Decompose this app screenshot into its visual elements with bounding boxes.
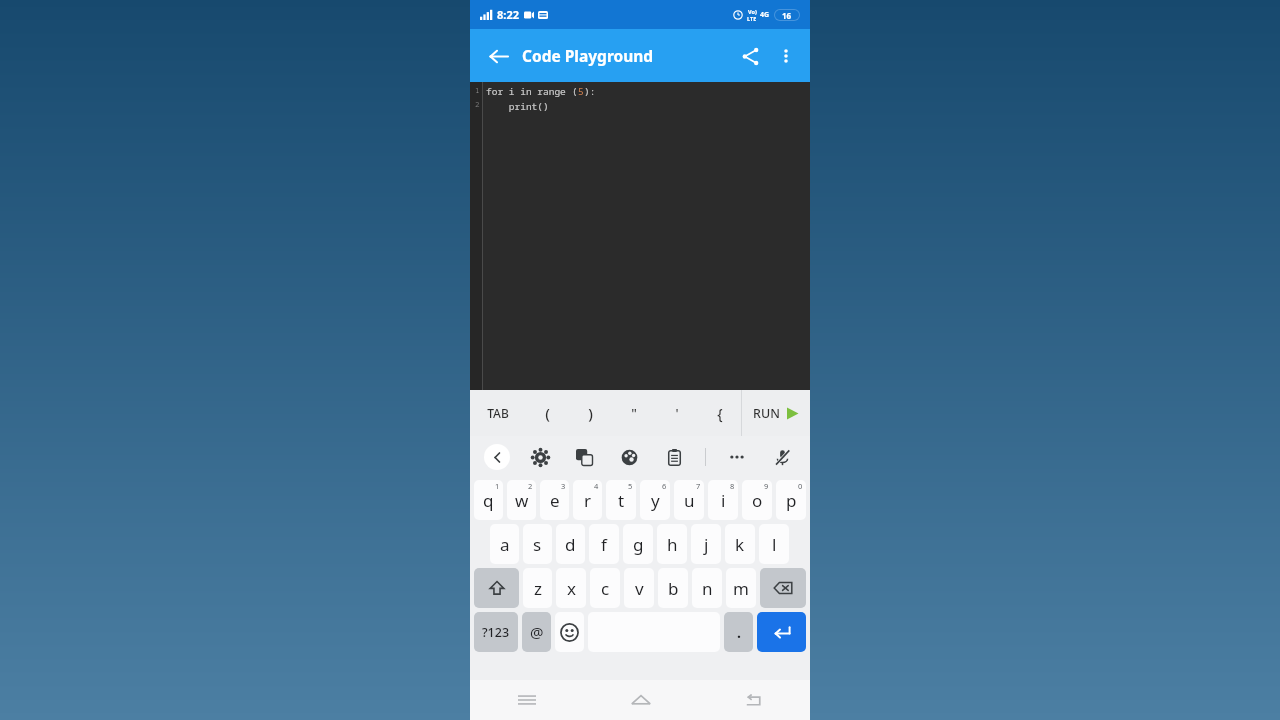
button[interactable]: q xyxy=(474,480,503,520)
button[interactable]: { xyxy=(698,390,741,436)
staticText: ( xyxy=(545,403,550,423)
button[interactable]: Share xyxy=(732,38,768,74)
staticText: @ xyxy=(530,622,544,642)
staticText: b xyxy=(668,577,679,600)
staticText: d xyxy=(565,533,576,556)
button[interactable]: ) xyxy=(569,390,612,436)
staticText: for i in range xyxy=(486,85,572,98)
button[interactable]: @ xyxy=(522,612,551,652)
button[interactable]: Backspace xyxy=(760,568,806,608)
staticText: RUN xyxy=(753,405,780,422)
staticText: 2 xyxy=(475,99,480,109)
staticText: 4G xyxy=(760,10,770,20)
button[interactable]: More xyxy=(723,443,751,471)
staticText: . xyxy=(737,623,741,642)
staticText: n xyxy=(702,577,713,600)
button[interactable]: t xyxy=(606,480,636,520)
button[interactable]: j xyxy=(691,524,721,564)
staticText: ?123 xyxy=(482,624,510,641)
staticText: p xyxy=(786,489,797,512)
staticText: f xyxy=(601,533,607,556)
button[interactable]: Translate xyxy=(570,443,598,471)
staticText: l xyxy=(772,533,777,556)
button[interactable]: RUN xyxy=(742,390,810,436)
button[interactable]: v xyxy=(624,568,654,608)
button[interactable]: u xyxy=(674,480,704,520)
button[interactable]: Back xyxy=(697,680,810,720)
staticText: ( xyxy=(572,85,578,98)
staticText: 9 xyxy=(764,481,769,491)
button[interactable]: o xyxy=(742,480,772,520)
button[interactable]: Enter xyxy=(757,612,806,652)
staticText: 3 xyxy=(561,481,566,491)
staticText: y xyxy=(651,489,660,512)
staticText: TAB xyxy=(487,405,509,421)
button[interactable]: l xyxy=(759,524,789,564)
button[interactable]: Back xyxy=(481,39,515,73)
button[interactable]: Voice input off xyxy=(768,443,796,471)
staticText: 2 xyxy=(528,481,533,491)
button[interactable]: g xyxy=(623,524,653,564)
button[interactable]: . xyxy=(724,612,753,652)
button[interactable]: r xyxy=(573,480,602,520)
staticText: w xyxy=(515,489,529,512)
button[interactable]: ( xyxy=(525,390,569,436)
staticText: 1 xyxy=(475,85,480,95)
button[interactable]: Clipboard xyxy=(660,443,688,471)
button[interactable]: ?123 xyxy=(474,612,518,652)
button[interactable]: Theme xyxy=(615,443,643,471)
staticText: s xyxy=(533,533,542,556)
button[interactable]: k xyxy=(725,524,755,564)
button[interactable]: c xyxy=(590,568,620,608)
staticText: c xyxy=(601,577,610,600)
button[interactable]: z xyxy=(523,568,552,608)
staticText: q xyxy=(483,489,494,512)
button[interactable]: h xyxy=(657,524,687,564)
button[interactable]: Emoji xyxy=(555,612,584,652)
staticText: k xyxy=(735,533,745,556)
staticText: LTE xyxy=(747,15,757,22)
button[interactable]: d xyxy=(556,524,585,564)
button[interactable]: e xyxy=(540,480,569,520)
button[interactable]: y xyxy=(640,480,670,520)
button[interactable]: f xyxy=(589,524,619,564)
button[interactable]: Shift xyxy=(474,568,519,608)
button[interactable]: n xyxy=(692,568,722,608)
staticText: 4 xyxy=(594,481,599,491)
button[interactable]: w xyxy=(507,480,536,520)
staticText: ' xyxy=(675,404,679,422)
button[interactable]: More options xyxy=(768,38,804,74)
staticText: ) xyxy=(588,403,593,423)
button[interactable]: Recents xyxy=(470,680,584,720)
staticText: Vo) xyxy=(748,8,757,15)
button[interactable]: i xyxy=(708,480,738,520)
staticText: j xyxy=(704,533,709,556)
button[interactable]: x xyxy=(556,568,586,608)
staticText: 0 xyxy=(798,481,803,491)
button[interactable]: b xyxy=(658,568,688,608)
staticText: 5 xyxy=(628,481,633,491)
staticText: 6 xyxy=(662,481,667,491)
button[interactable]: Home xyxy=(584,680,697,720)
staticText: " xyxy=(631,404,637,422)
staticText: print() xyxy=(486,100,549,113)
staticText: 7 xyxy=(696,481,701,491)
button[interactable]: p xyxy=(776,480,806,520)
button[interactable]: Collapse toolbar xyxy=(484,444,510,470)
staticText: { xyxy=(717,404,723,423)
staticText: v xyxy=(635,577,644,600)
button[interactable]: ' xyxy=(655,390,698,436)
staticText: a xyxy=(500,533,510,556)
staticText: x xyxy=(567,577,576,600)
staticText: r xyxy=(584,489,592,512)
button[interactable]: s xyxy=(523,524,552,564)
button[interactable]: TAB xyxy=(470,390,525,436)
staticText: o xyxy=(752,489,763,512)
button[interactable]: m xyxy=(726,568,756,608)
button[interactable]: Settings xyxy=(526,443,554,471)
button[interactable]: " xyxy=(612,390,655,436)
staticText: i xyxy=(721,489,726,512)
staticText: h xyxy=(667,533,678,556)
button[interactable]: a xyxy=(490,524,519,564)
